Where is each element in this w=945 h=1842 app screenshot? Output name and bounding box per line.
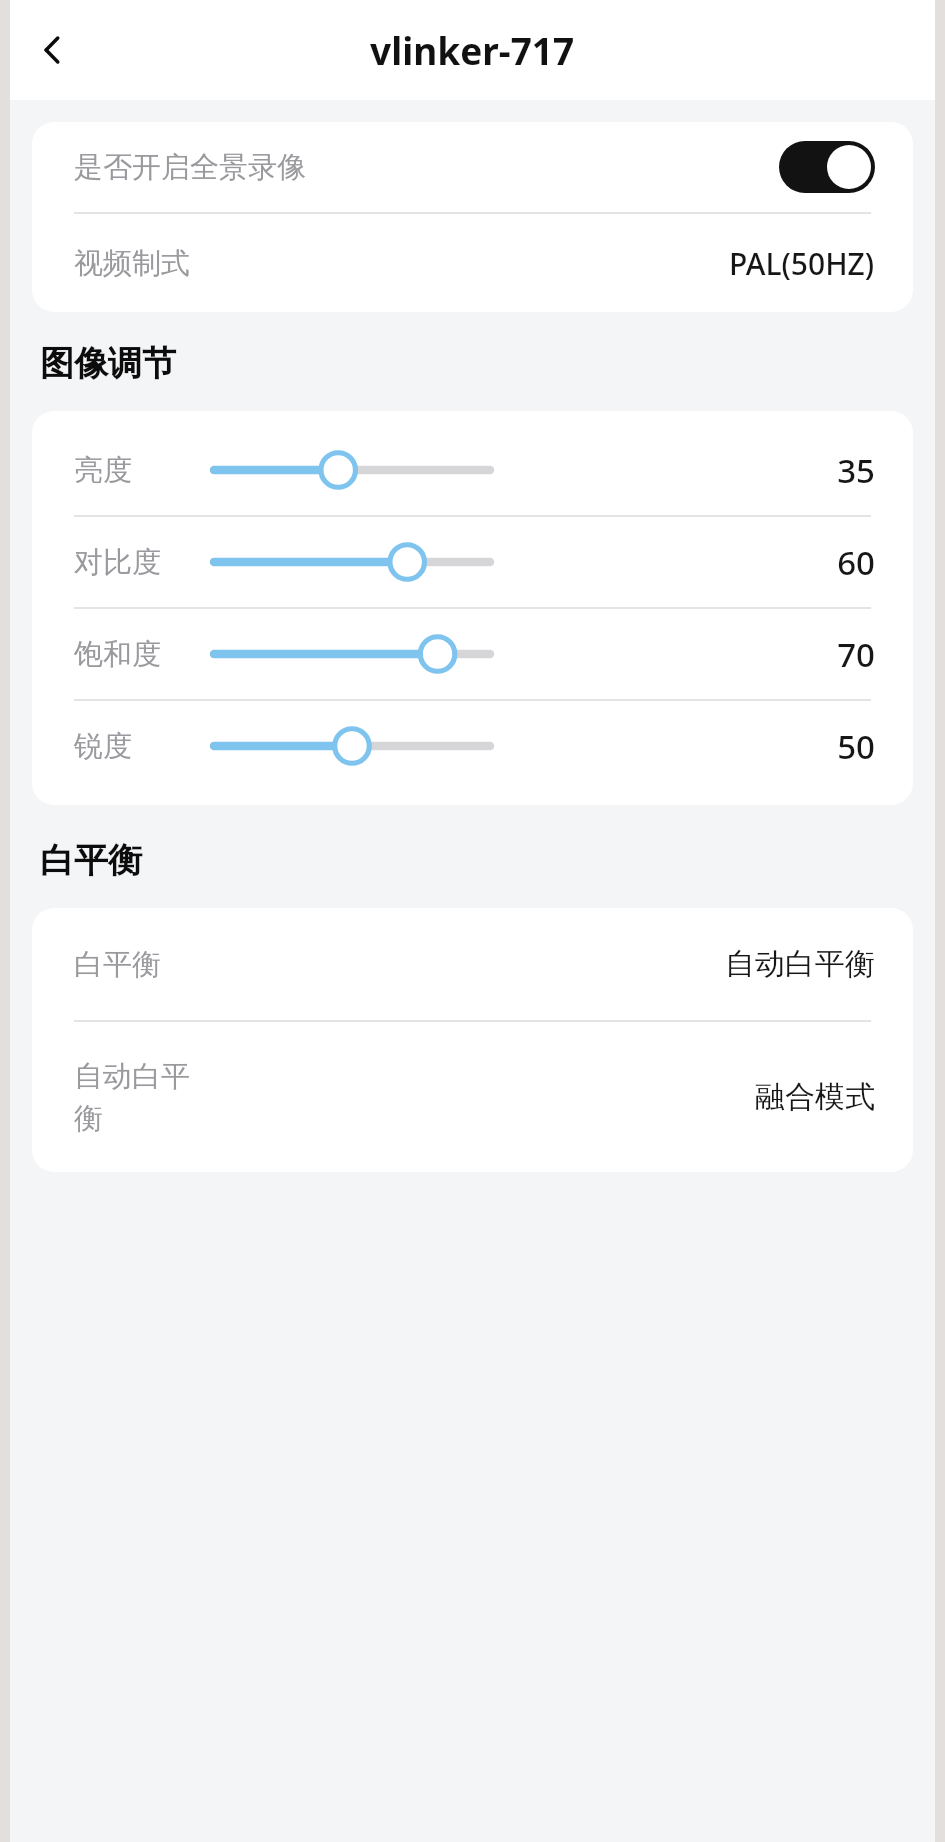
button[interactable]: Toggle panorama recording	[779, 141, 875, 193]
staticText: 35	[813, 448, 875, 493]
staticText: PAL(50HZ)	[729, 243, 875, 284]
staticText: 自动白平 衡	[74, 1058, 190, 1137]
button[interactable]: 亮度	[32, 425, 913, 515]
staticText: 亮度	[74, 452, 192, 489]
button[interactable]: 白平衡	[32, 908, 913, 1020]
staticText: 是否开启全景录像	[74, 149, 306, 186]
button[interactable]: 饱和度	[32, 609, 913, 699]
staticText: 融合模式	[755, 1078, 875, 1116]
button[interactable]: 锐度	[32, 701, 913, 791]
staticText: 对比度	[74, 544, 192, 581]
staticText: 锐度	[74, 728, 192, 765]
staticText: 图像调节	[40, 342, 176, 385]
staticText: 视频制式	[74, 245, 190, 282]
button[interactable]: 自动白平 衡	[32, 1022, 913, 1172]
staticText: 70	[813, 632, 875, 677]
staticText: 50	[813, 724, 875, 769]
button[interactable]: 对比度	[32, 517, 913, 607]
button[interactable]: Back	[10, 7, 96, 93]
staticText: 饱和度	[74, 636, 192, 673]
staticText: 自动白平衡	[725, 945, 875, 983]
staticText: 60	[813, 540, 875, 585]
staticText: 白平衡	[74, 946, 161, 983]
button[interactable]: 视频制式	[32, 214, 913, 312]
staticText: vlinker-717	[370, 25, 575, 75]
staticText: 白平衡	[40, 839, 142, 882]
button[interactable]: 是否开启全景录像	[32, 122, 913, 212]
